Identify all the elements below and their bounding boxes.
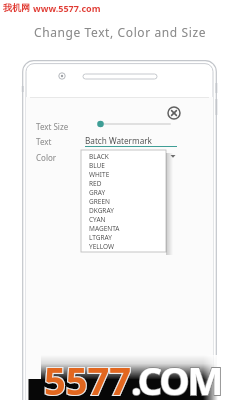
staticText: BLUE <box>89 161 105 170</box>
button[interactable]: RED <box>89 179 161 188</box>
button[interactable]: LTGRAY <box>89 233 161 242</box>
staticText: WHITE <box>89 170 110 179</box>
staticText: BLACK <box>89 152 109 161</box>
staticText: MAGENTA <box>89 224 120 233</box>
button[interactable]: CYAN <box>89 215 161 224</box>
staticText: .COM <box>131 354 222 400</box>
staticText: 5577 <box>44 354 131 400</box>
staticText: Text Size <box>36 121 69 132</box>
staticText: YELLOW <box>89 242 115 251</box>
staticText: Color <box>36 152 57 163</box>
button[interactable]: YELLOW <box>89 242 161 251</box>
button[interactable]: WHITE <box>89 170 161 179</box>
staticText: .COM <box>131 354 222 400</box>
staticText: DKGRAY <box>89 206 114 215</box>
button[interactable]: Text size slider <box>94 118 172 130</box>
staticText: GRAY <box>89 188 106 197</box>
button[interactable]: GRAY <box>89 188 161 197</box>
staticText: Batch Watermark <box>85 135 152 146</box>
staticText: 我机网 <box>3 2 30 13</box>
button[interactable]: BLUE <box>89 161 161 170</box>
button[interactable]: Close <box>166 105 182 121</box>
button[interactable]: DKGRAY <box>89 206 161 215</box>
staticText: www.5577.com <box>33 2 101 14</box>
staticText: GREEN <box>89 197 110 206</box>
button[interactable]: GREEN <box>89 197 161 206</box>
button[interactable]: BLACK <box>89 152 161 161</box>
staticText: Change Text, Color and Size <box>34 24 207 40</box>
staticText: LTGRAY <box>89 233 112 242</box>
staticText: 5577 <box>44 354 131 400</box>
staticText: RED <box>89 179 102 188</box>
staticText: CYAN <box>89 215 106 224</box>
button[interactable]: MAGENTA <box>89 224 161 233</box>
staticText: Text <box>36 136 52 147</box>
